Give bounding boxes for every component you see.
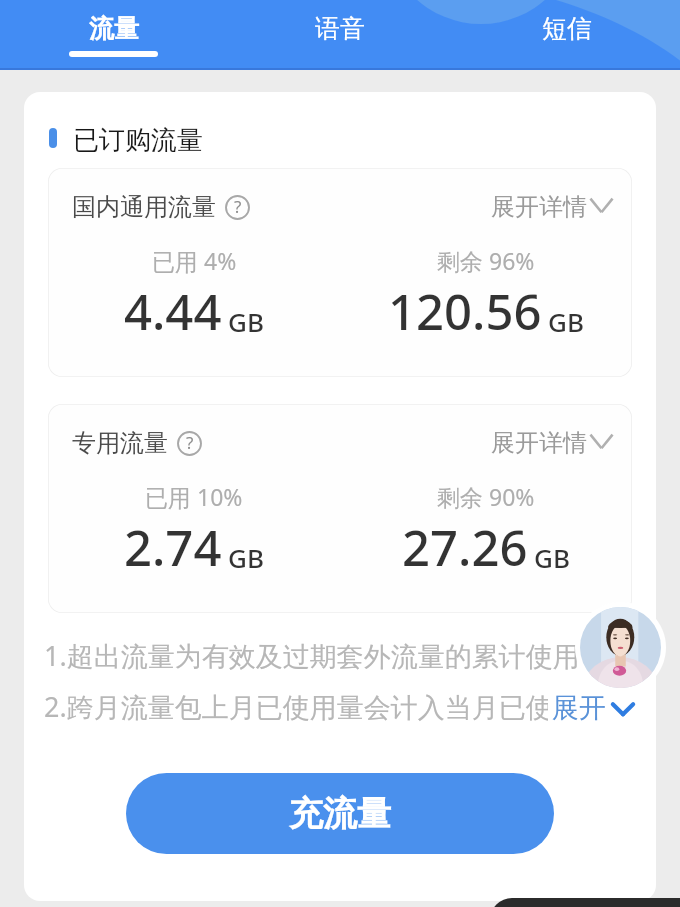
staticText: 展开详情 (491, 192, 587, 222)
staticText: 流量 (89, 13, 139, 44)
staticText: 27.26 (402, 514, 528, 581)
button[interactable]: 展开详情 (491, 192, 613, 222)
staticText: 已订购流量 (73, 124, 203, 152)
staticText: 已用 4% (152, 245, 237, 276)
staticText: 短信 (542, 13, 592, 44)
button[interactable]: 展开详情 (491, 428, 613, 458)
staticText: GB (228, 304, 264, 339)
staticText: ? (234, 195, 242, 218)
staticText: 展开 (552, 691, 606, 725)
staticText: GB (548, 304, 584, 339)
staticText: GB (228, 540, 264, 575)
button[interactable]: 短信 (453, 0, 680, 57)
staticText: 120.56 (388, 278, 542, 345)
button[interactable]: 语音 (226, 0, 453, 57)
staticText: 国内通用流量 (72, 192, 216, 222)
button[interactable]: 展开 (548, 689, 640, 727)
staticText: 2.跨月流量包上月已使用量会计入当月已使用量 (44, 688, 607, 725)
button[interactable]: Customer service assistant (575, 602, 666, 693)
staticText: ? (186, 431, 194, 454)
staticText: 2.74 (124, 514, 222, 581)
staticText: 充流量 (289, 792, 391, 835)
staticText: 专用流量 (72, 428, 168, 458)
staticText: 1.超出流量为有效及过期套外流量的累计使用量 (44, 637, 607, 674)
staticText: 剩余 90% (437, 481, 535, 512)
staticText: GB (534, 540, 570, 575)
button[interactable]: 流量 (0, 0, 226, 57)
button[interactable]: 充流量 (126, 773, 554, 854)
staticText: 4.44 (124, 278, 222, 345)
staticText: 语音 (315, 13, 365, 44)
staticText: 剩余 96% (437, 245, 535, 276)
staticText: 已用 10% (145, 481, 243, 512)
staticText: 展开详情 (491, 428, 587, 458)
